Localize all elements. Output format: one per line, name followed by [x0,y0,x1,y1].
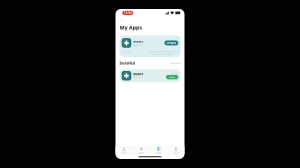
button[interactable]: MiStore [0,0,300,74]
